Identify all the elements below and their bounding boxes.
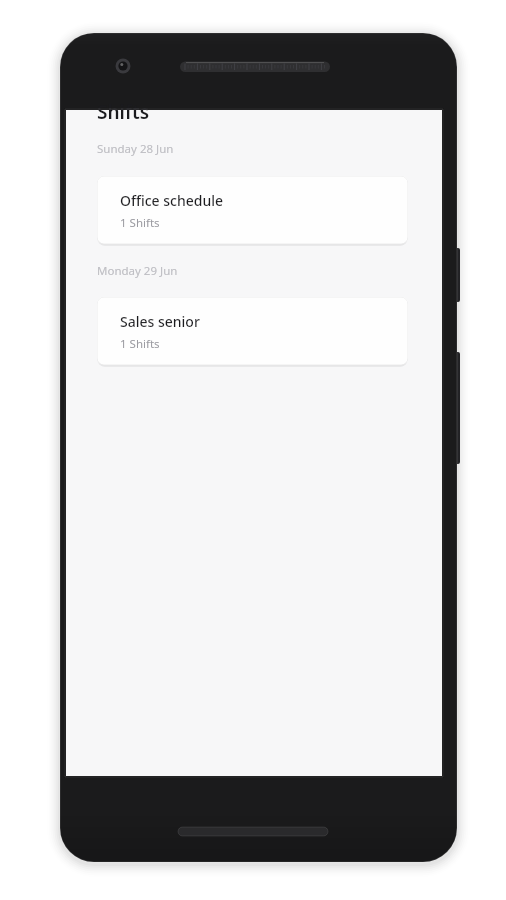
staticText: Sales senior — [120, 312, 200, 331]
staticText: 1 Shifts — [120, 336, 160, 352]
staticText: Sunday 28 Jun — [97, 141, 174, 157]
button[interactable]: Office schedule — [97, 176, 408, 244]
staticText: Shifts — [97, 99, 150, 125]
staticText: 1 Shifts — [120, 215, 160, 231]
staticText: Office schedule — [120, 191, 224, 210]
staticText: Monday 29 Jun — [97, 263, 178, 279]
button[interactable]: Sales senior — [97, 297, 408, 365]
